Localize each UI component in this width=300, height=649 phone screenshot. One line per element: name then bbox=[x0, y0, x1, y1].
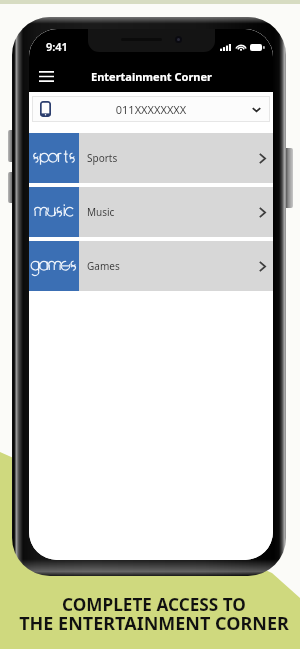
staticText: Sports bbox=[87, 151, 118, 165]
staticText: Games bbox=[87, 259, 120, 273]
button[interactable]: Sports bbox=[29, 133, 273, 183]
staticText: Entertainment Corner bbox=[91, 69, 212, 84]
button[interactable]: Music bbox=[29, 187, 273, 237]
staticText: THE ENTERTAINMENT CORNER bbox=[19, 611, 289, 636]
staticText: COMPLETE ACCESS TO bbox=[62, 593, 246, 616]
staticText: 011XXXXXXXX bbox=[51, 102, 251, 117]
button[interactable]: 011XXXXXXXX bbox=[32, 96, 270, 122]
staticText: Music bbox=[87, 205, 115, 219]
button[interactable]: Games bbox=[29, 241, 273, 291]
button[interactable]: Open navigation menu bbox=[32, 62, 60, 90]
staticText: 9:41 bbox=[46, 39, 68, 54]
